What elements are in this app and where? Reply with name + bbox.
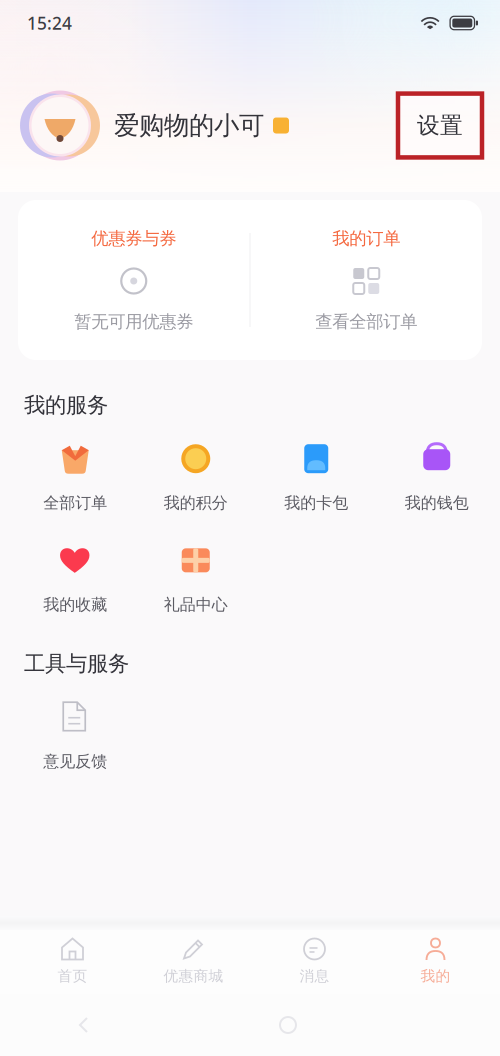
button[interactable]: 优惠券与券: [18, 228, 249, 332]
button[interactable]: 首页: [12, 930, 133, 994]
staticText: 设置: [417, 112, 463, 139]
button[interactable]: Back: [76, 1016, 94, 1034]
button[interactable]: 我的钱包: [376, 436, 497, 519]
button[interactable]: 我的收藏: [15, 538, 135, 621]
staticText: 我的卡包: [284, 493, 348, 513]
button[interactable]: 礼品中心: [135, 538, 256, 621]
button[interactable]: 我的积分: [135, 436, 256, 519]
button[interactable]: 意见反馈: [15, 695, 135, 777]
staticText: 我的: [420, 967, 450, 985]
staticText: 意见反馈: [43, 752, 107, 771]
button[interactable]: 全部订单: [15, 436, 135, 519]
staticText: 15:24: [27, 11, 72, 34]
button[interactable]: 设置: [398, 94, 482, 157]
staticText: 我的钱包: [405, 493, 469, 513]
staticText: 工具与服务: [24, 650, 129, 677]
staticText: 我的服务: [24, 392, 108, 418]
staticText: 消息: [299, 967, 329, 985]
staticText: 查看全部订单: [315, 311, 417, 332]
staticText: 礼品中心: [164, 595, 228, 615]
button[interactable]: 优惠商城: [133, 930, 254, 994]
staticText: 我的积分: [164, 493, 228, 513]
staticText: 优惠券与券: [91, 228, 176, 249]
staticText: 首页: [57, 967, 87, 985]
button[interactable]: 我的: [375, 930, 496, 994]
button[interactable]: Home: [280, 1017, 296, 1033]
staticText: 暂无可用优惠券: [74, 311, 193, 332]
button[interactable]: 我的卡包: [256, 436, 376, 519]
staticText: 优惠商城: [163, 967, 223, 985]
button[interactable]: 消息: [254, 930, 375, 994]
staticText: 爱购物的小可: [114, 110, 264, 141]
staticText: 我的订单: [332, 228, 400, 249]
button[interactable]: 我的订单: [250, 228, 482, 332]
staticText: 全部订单: [43, 493, 107, 513]
staticText: 我的收藏: [43, 595, 107, 615]
